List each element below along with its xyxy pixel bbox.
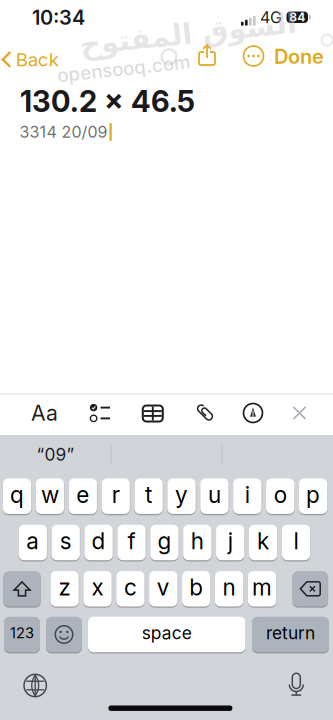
staticText: u — [208, 481, 221, 508]
staticText: l — [293, 528, 298, 554]
staticText: c — [124, 574, 137, 601]
button[interactable] — [194, 401, 216, 423]
button[interactable]: Back — [1, 48, 59, 70]
button[interactable]: b — [182, 571, 210, 606]
button[interactable]: h — [183, 525, 211, 560]
button[interactable]: s — [51, 525, 80, 560]
button[interactable]: w — [36, 478, 64, 514]
staticText: p — [306, 481, 320, 508]
staticText: m — [252, 574, 272, 601]
staticText: v — [157, 574, 170, 601]
staticText: i — [245, 481, 250, 508]
staticText: r — [112, 481, 120, 508]
staticText: e — [76, 481, 89, 508]
staticText: k — [257, 528, 269, 554]
button[interactable]: return — [252, 617, 329, 652]
button[interactable]: e — [69, 478, 97, 514]
staticText: 4G — [260, 8, 282, 27]
staticText: السوق المفتوح — [80, 19, 298, 53]
button[interactable]: a — [19, 525, 47, 560]
button[interactable]: u — [200, 478, 228, 514]
button[interactable]: l — [282, 525, 310, 560]
button[interactable]: k — [249, 525, 277, 560]
staticText: t — [145, 481, 152, 508]
staticText: z — [59, 574, 71, 601]
button[interactable]: q — [3, 478, 31, 514]
button[interactable] — [293, 571, 328, 606]
button[interactable]: c — [116, 571, 144, 606]
button[interactable] — [24, 674, 46, 697]
button[interactable] — [289, 672, 304, 696]
button[interactable] — [3, 571, 40, 606]
button[interactable] — [143, 405, 163, 421]
staticText: a — [26, 528, 39, 554]
button[interactable] — [243, 403, 262, 422]
staticText: n — [223, 574, 236, 601]
button[interactable] — [196, 43, 218, 66]
staticText: w — [41, 481, 59, 508]
staticText: opensooq.com — [55, 53, 189, 75]
staticText: 10:34 — [32, 6, 85, 29]
staticText: b — [189, 574, 203, 601]
button[interactable]: m — [248, 571, 276, 606]
staticText: h — [191, 528, 204, 554]
staticText: 130.2 x 46.5 — [20, 84, 195, 119]
staticText: “09” — [36, 444, 74, 465]
button[interactable] — [46, 617, 82, 652]
button[interactable]: p — [299, 478, 327, 514]
button[interactable]: Done — [274, 45, 324, 68]
staticText: Done — [274, 45, 324, 68]
button[interactable]: t — [134, 478, 163, 514]
button[interactable]: d — [84, 525, 113, 560]
staticText: space — [142, 623, 192, 643]
staticText: g — [157, 528, 171, 554]
staticText: Back — [16, 48, 59, 70]
staticText: o — [274, 481, 287, 508]
button[interactable]: “09” — [0, 436, 110, 473]
button[interactable]: r — [101, 478, 130, 514]
button[interactable]: z — [50, 571, 79, 606]
staticText: d — [92, 528, 106, 554]
button[interactable]: f — [117, 525, 146, 560]
staticText: 84 — [289, 10, 305, 24]
button[interactable]: x — [83, 571, 112, 606]
staticText: j — [228, 528, 233, 554]
staticText: return — [266, 623, 315, 643]
staticText: f — [127, 528, 135, 554]
staticText: x — [91, 574, 103, 601]
staticText: 3314 20/09 — [19, 122, 107, 141]
button[interactable] — [243, 45, 264, 66]
button[interactable]: v — [149, 571, 177, 606]
staticText: q — [10, 481, 24, 508]
button[interactable]: Aa — [31, 400, 58, 426]
button[interactable]: y — [167, 478, 196, 514]
button[interactable]: j — [216, 525, 244, 560]
button[interactable]: i — [233, 478, 261, 514]
staticText: Aa — [31, 400, 58, 426]
staticText: 123 — [10, 624, 34, 642]
button[interactable]: 123 — [4, 617, 40, 652]
staticText: y — [175, 481, 188, 508]
staticText: s — [60, 528, 72, 554]
button[interactable] — [293, 406, 306, 419]
button[interactable]: n — [215, 571, 243, 606]
button[interactable] — [89, 403, 111, 423]
button[interactable]: space — [88, 617, 245, 652]
button[interactable]: o — [266, 478, 294, 514]
button[interactable]: g — [150, 525, 178, 560]
